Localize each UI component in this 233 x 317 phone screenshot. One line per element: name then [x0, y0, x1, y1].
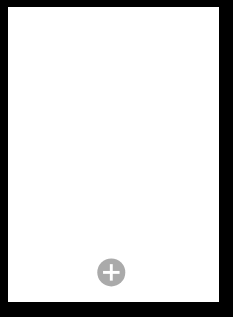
- button[interactable]: Add: [96, 257, 127, 288]
